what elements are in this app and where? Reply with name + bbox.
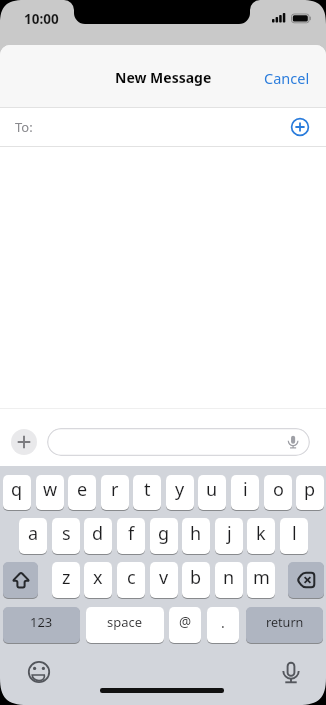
button[interactable]: i [231,475,259,510]
staticText: . [221,613,225,632]
button[interactable]: return [246,607,323,643]
button[interactable]: w [36,475,64,510]
staticText: j [227,521,232,546]
staticText: x [93,565,103,590]
staticText: e [77,477,88,502]
button[interactable]: d [84,518,112,554]
staticText: r [111,477,119,502]
staticText: k [256,521,266,546]
staticText: b [190,565,202,590]
button[interactable]: Cancel [264,68,326,88]
staticText: space [107,613,143,631]
button[interactable]: g [150,518,178,554]
button[interactable]: s [52,518,80,554]
button[interactable]: q [3,475,31,510]
button[interactable]: b [182,562,210,598]
staticText: o [273,477,284,502]
staticText: y [175,477,185,502]
staticText: 10:00 [24,10,59,28]
button[interactable]: f [117,518,145,554]
staticText: m [253,565,270,590]
button[interactable]: space [86,607,164,643]
staticText: s [62,521,71,546]
staticText: q [11,477,23,502]
button[interactable]: v [150,562,178,598]
button[interactable]: t [133,475,161,510]
button[interactable]: r [101,475,129,510]
button[interactable]: p [296,475,324,510]
button[interactable] [281,660,301,686]
staticText: p [304,477,316,502]
staticText: w [43,477,58,502]
staticText: a [28,521,39,546]
staticText: return [266,614,304,631]
button[interactable]: o [264,475,292,510]
button[interactable]: 123 [3,607,80,643]
staticText: v [159,565,169,590]
staticText: u [206,477,218,502]
button[interactable]: h [182,518,210,554]
staticText: 123 [30,613,53,631]
staticText: d [92,521,104,546]
staticText: f [128,521,135,546]
button[interactable]: x [84,562,112,598]
staticText: c [127,565,136,590]
staticText: Cancel [264,68,310,88]
button[interactable]: n [215,562,243,598]
staticText: i [243,477,248,502]
button[interactable]: j [215,518,243,554]
button[interactable] [47,428,310,456]
staticText: n [223,565,235,590]
staticText: t [144,477,151,502]
staticText: New Message [115,68,212,87]
button[interactable]: m [247,562,275,598]
button[interactable]: k [247,518,275,554]
button[interactable]: l [280,518,308,554]
staticText: l [292,521,297,546]
button[interactable]: To: [0,108,326,146]
staticText: h [190,521,202,546]
staticText: @ [179,613,192,631]
button[interactable]: . [207,607,239,643]
button[interactable] [288,562,324,598]
button[interactable] [3,562,38,598]
button[interactable]: a [19,518,47,554]
staticText: To: [15,118,33,136]
button[interactable]: c [117,562,145,598]
button[interactable]: u [198,475,226,510]
staticText: z [62,565,71,590]
button[interactable] [27,660,51,684]
button[interactable]: y [166,475,194,510]
button[interactable] [11,429,37,455]
staticText: g [158,521,170,546]
button[interactable]: e [68,475,96,510]
button[interactable]: z [52,562,80,598]
button[interactable]: @ [169,607,201,643]
